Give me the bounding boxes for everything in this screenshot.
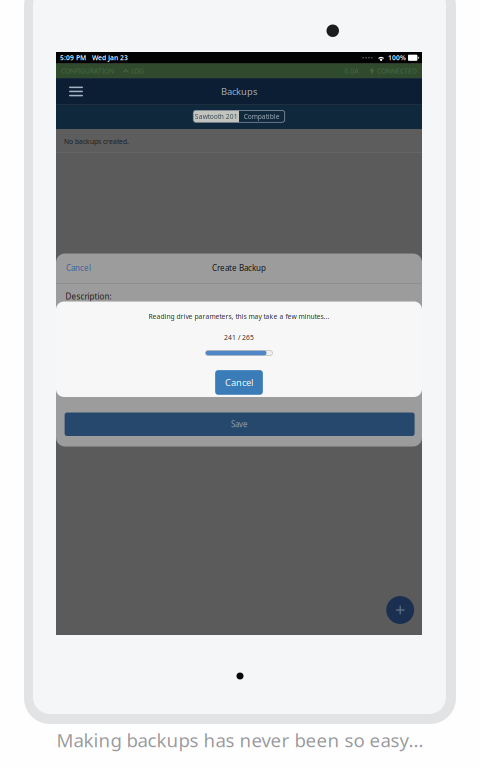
staticText: Cancel (66, 263, 91, 273)
staticText: No backups created. (64, 137, 129, 146)
staticText: 241 / 265 (224, 333, 254, 342)
staticText: Sawtooth 201 (195, 112, 238, 121)
staticText: Making backups has never been so easy... (56, 728, 423, 752)
staticText: Backups (221, 85, 257, 98)
staticText: Wed Jan 23 (92, 53, 128, 62)
staticText: CONFIGURATION (61, 66, 114, 75)
button[interactable]: Menu (61, 78, 91, 105)
button[interactable]: Compatible (239, 110, 285, 122)
staticText: Compatible (244, 112, 280, 121)
staticText: LOG (131, 66, 144, 75)
staticText: Reading drive parameters, this may take … (148, 312, 329, 321)
staticText: Cancel (225, 376, 253, 389)
button[interactable]: Sawtooth 201 (193, 110, 239, 122)
staticText: 0.0A (344, 66, 358, 75)
staticText: 5:09 PM (60, 53, 86, 62)
staticText: CONNECTED (377, 66, 417, 75)
staticText: Save (231, 419, 248, 429)
staticText: 100% (388, 53, 406, 62)
button[interactable]: Save (65, 412, 415, 436)
button[interactable]: Cancel (215, 370, 263, 395)
button[interactable]: Create backup (386, 596, 414, 624)
button[interactable]: Cancel (56, 253, 110, 282)
staticText: Create Backup (212, 263, 266, 273)
staticText: Description: (65, 291, 111, 302)
